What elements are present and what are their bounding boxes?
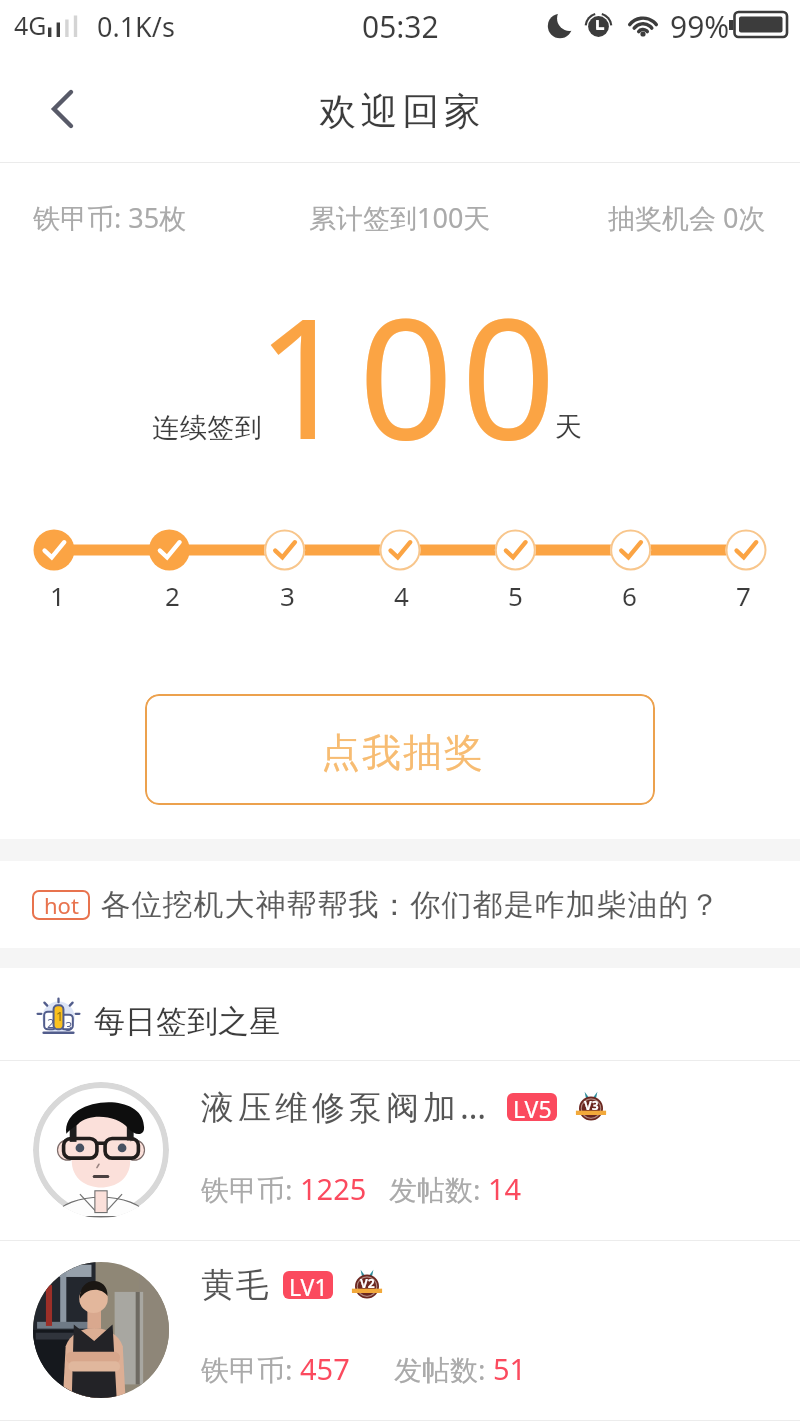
staticText: 5 — [508, 578, 523, 613]
staticText: 100 — [256, 262, 564, 462]
staticText: 铁甲币: — [201, 1170, 300, 1208]
staticText: V2 — [360, 1275, 375, 1291]
staticText: 3 — [65, 1017, 73, 1035]
staticText: 发帖数: — [394, 1350, 493, 1388]
staticText: 铁甲币: 35枚 — [33, 199, 187, 236]
staticText: 1 — [50, 578, 65, 613]
button[interactable]: 2 — [0, 968, 800, 1060]
button[interactable]: 黄毛 — [0, 1240, 800, 1420]
staticText: LV5 — [513, 1093, 552, 1121]
staticText: 点我抽奖 — [320, 728, 484, 777]
staticText: V3 — [584, 1097, 599, 1113]
staticText: 发帖数: — [389, 1170, 488, 1208]
button[interactable]: 液压维修泵阀加… — [0, 1060, 800, 1240]
button[interactable]: 1 — [0, 472, 800, 632]
button[interactable]: Back — [0, 55, 125, 163]
staticText: 99% — [670, 6, 730, 47]
staticText: 黄毛 — [201, 1264, 269, 1306]
staticText: 各位挖机大神帮帮我：你们都是咋加柴油的？ — [100, 886, 720, 924]
staticText: 51 — [493, 1349, 527, 1388]
staticText: 抽奖机会 0次 — [608, 199, 766, 236]
staticText: 液压维修泵阀加… — [201, 1084, 491, 1129]
button[interactable]: hot — [0, 861, 800, 948]
staticText: 7 — [736, 578, 751, 613]
staticText: 6 — [622, 578, 637, 613]
staticText: 3 — [280, 578, 295, 613]
staticText: 4G — [14, 8, 47, 42]
staticText: 14 — [488, 1169, 522, 1208]
staticText: 连续签到 — [152, 411, 262, 445]
staticText: 累计签到100天 — [309, 199, 491, 236]
button[interactable]: 点我抽奖 — [145, 694, 655, 805]
staticText: 2 — [47, 1014, 55, 1032]
staticText: hot — [44, 890, 79, 920]
staticText: 每日签到之星 — [94, 1002, 280, 1041]
staticText: 4 — [394, 578, 409, 613]
staticText: 天 — [555, 410, 582, 444]
staticText: 欢迎回家 — [317, 88, 483, 135]
staticText: 1225 — [300, 1169, 367, 1208]
staticText: 铁甲币: — [201, 1350, 300, 1388]
staticText: 0.1K/s — [97, 8, 175, 45]
staticText: 1 — [56, 1007, 64, 1025]
staticText: 457 — [300, 1349, 350, 1388]
staticText: 05:32 — [362, 6, 439, 47]
staticText: 2 — [165, 578, 180, 613]
staticText: LV1 — [289, 1271, 328, 1299]
